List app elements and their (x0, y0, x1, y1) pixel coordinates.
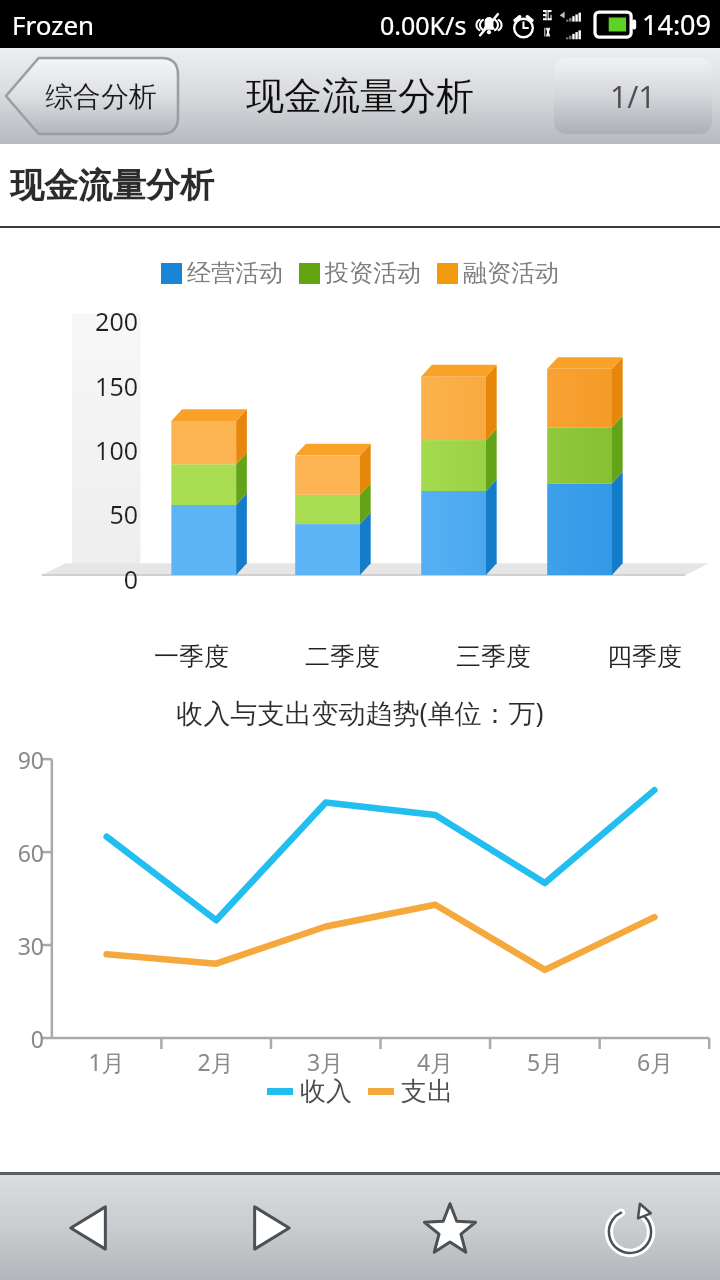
staticText: 5月 (490, 1046, 600, 1077)
staticText: 50 (88, 497, 138, 531)
staticText: 14:09 (642, 6, 712, 43)
staticText: 融资活动 (463, 258, 559, 288)
staticText: 二季度 (267, 641, 418, 672)
button[interactable]: 1/1 (554, 58, 712, 134)
staticText: 0 (88, 562, 138, 596)
staticText: 3月 (270, 1046, 380, 1077)
staticText: 6月 (600, 1046, 710, 1077)
staticText: 200 (88, 304, 138, 338)
staticText: 一季度 (116, 641, 267, 672)
staticText: 三季度 (418, 641, 569, 672)
button[interactable]: Back (0, 1175, 180, 1280)
staticText: 0 (0, 1023, 44, 1054)
staticText: 现金流量分析 (246, 72, 474, 120)
staticText: 4月 (380, 1046, 490, 1077)
staticText: 100 (88, 433, 138, 467)
staticText: 0.00K/s (380, 8, 467, 42)
staticText: 四季度 (569, 641, 720, 672)
staticText: 150 (88, 369, 138, 403)
staticText: 支出 (401, 1075, 453, 1108)
staticText: 90 (0, 744, 44, 775)
button[interactable]: Favorite (360, 1175, 540, 1280)
staticText: 经营活动 (187, 258, 283, 288)
staticText: 30 (0, 930, 44, 961)
staticText: 收入与支出变动趋势(单位：万) (0, 694, 720, 731)
staticText: 2月 (161, 1046, 270, 1077)
staticText: Frozen (12, 7, 95, 42)
button[interactable]: Forward (180, 1175, 360, 1280)
staticText: 现金流量分析 (10, 164, 214, 207)
staticText: 1/1 (610, 76, 656, 117)
staticText: 收入 (300, 1075, 352, 1108)
button[interactable]: Refresh (540, 1175, 720, 1280)
staticText: 投资活动 (325, 258, 421, 288)
staticText: 60 (0, 837, 44, 868)
staticText: 综合分析 (45, 79, 157, 114)
button[interactable]: 综合分析 (6, 58, 178, 134)
staticText: 1月 (52, 1046, 161, 1077)
